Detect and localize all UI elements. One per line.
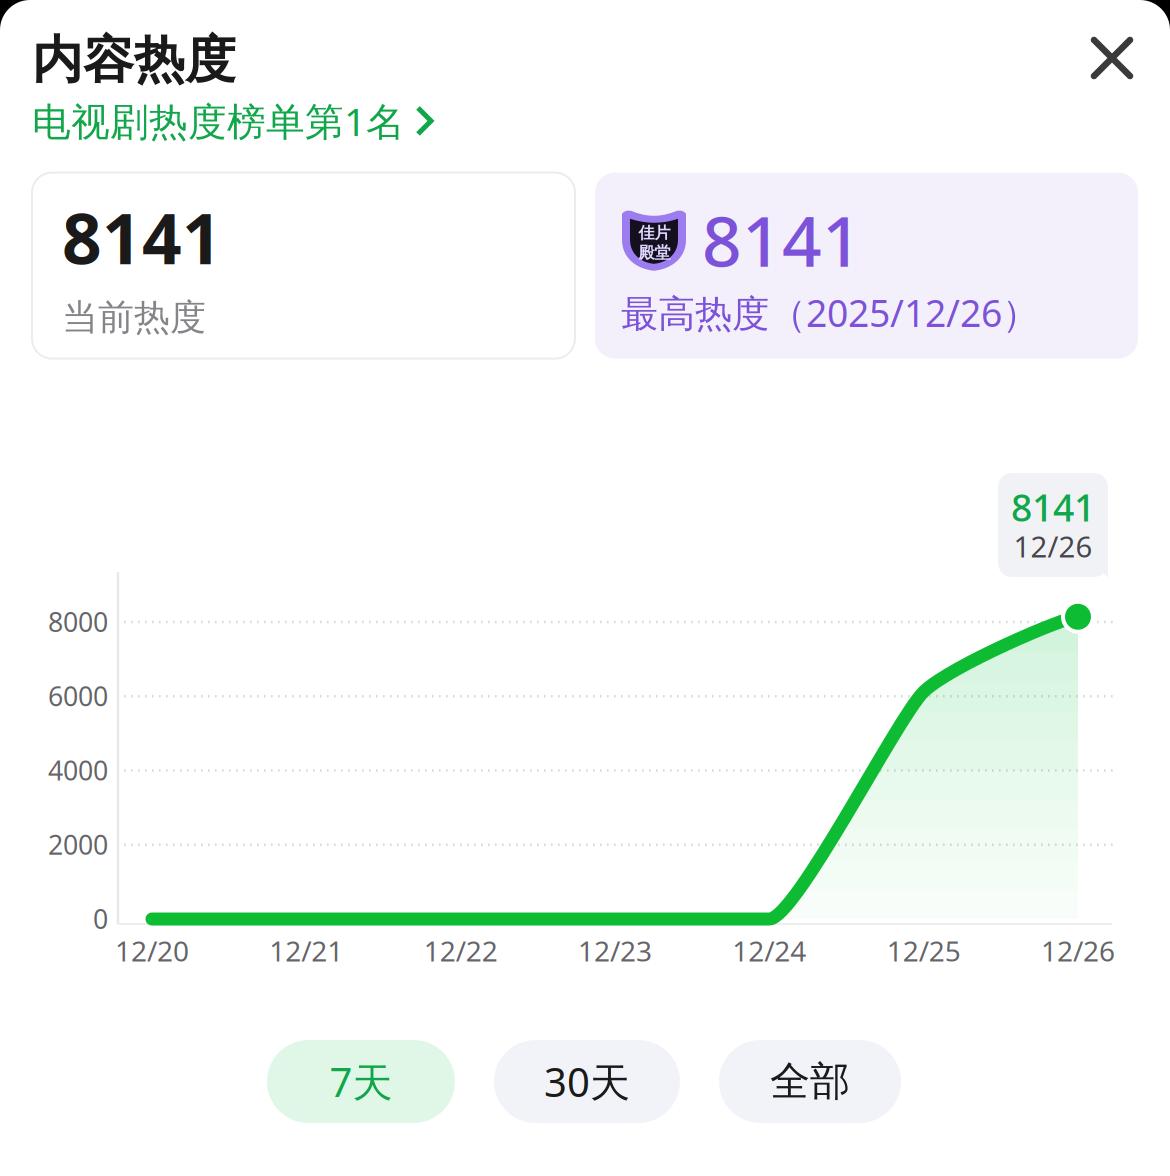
- button[interactable]: 电视剧热度榜单第1名: [32, 95, 436, 146]
- staticText: 6000: [48, 678, 108, 714]
- button[interactable]: 30天: [494, 1040, 680, 1123]
- button[interactable]: 全部: [719, 1040, 901, 1123]
- staticText: 2000: [48, 827, 108, 862]
- staticText: 12/25: [887, 932, 961, 969]
- staticText: 12/23: [578, 932, 652, 969]
- staticText: 12/22: [424, 932, 498, 969]
- staticText: 12/20: [115, 932, 189, 969]
- staticText: 12/21: [269, 932, 343, 969]
- staticText: 12/26: [1013, 526, 1092, 565]
- staticText: 7天: [329, 1055, 392, 1108]
- staticText: 殿堂: [638, 243, 670, 262]
- staticText: 电视剧热度榜单第1名: [32, 95, 405, 146]
- staticText: 12/24: [732, 932, 806, 969]
- button[interactable]: Close: [1086, 32, 1138, 84]
- staticText: 佳片: [638, 223, 670, 243]
- staticText: 12/26: [1041, 932, 1115, 969]
- staticText: 8000: [48, 604, 108, 639]
- staticText: 8141: [702, 194, 862, 286]
- staticText: 4000: [48, 752, 108, 788]
- staticText: 最高热度（2025/12/26）: [621, 288, 1039, 337]
- staticText: 30天: [544, 1055, 630, 1108]
- staticText: 当前热度: [62, 295, 206, 340]
- staticText: 8141: [1011, 482, 1095, 532]
- staticText: 内容热度: [32, 29, 236, 91]
- staticText: 0: [93, 901, 108, 936]
- staticText: 全部: [770, 1057, 850, 1106]
- staticText: 8141: [62, 191, 222, 283]
- button[interactable]: 7天: [267, 1040, 455, 1123]
